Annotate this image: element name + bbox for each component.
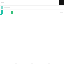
button[interactable]	[0, 10, 64, 14]
button[interactable]	[0, 6, 64, 9]
